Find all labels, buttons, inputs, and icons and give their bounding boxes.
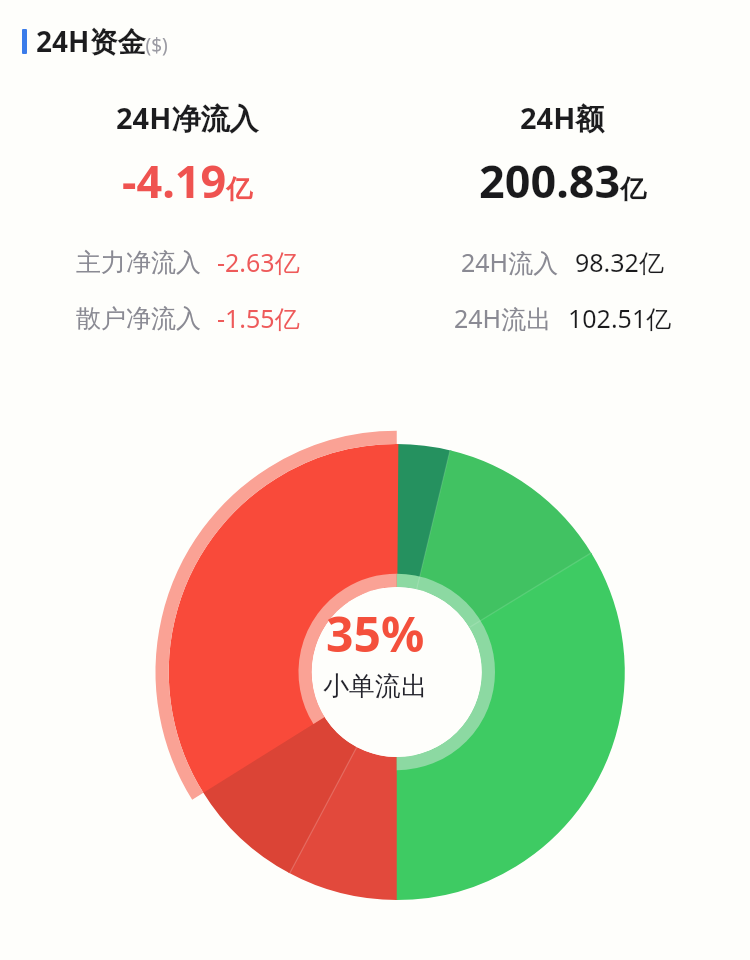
staticText: 98.32亿 [575, 245, 664, 279]
staticText: 102.51亿 [568, 301, 672, 335]
staticText: 24H净流入 [116, 98, 259, 138]
staticText: 35% [326, 601, 425, 666]
button[interactable]: 24H流出 [375, 301, 750, 335]
staticText: -2.63亿 [217, 245, 300, 279]
staticText: 24H流出 [454, 301, 552, 335]
staticText: 200.83亿 [479, 150, 647, 211]
staticText: 24H流入 [461, 245, 559, 279]
button[interactable]: 主力净流入 [0, 245, 375, 279]
staticText: 24H资金($) [36, 22, 168, 60]
staticText: 散户净流入 [76, 303, 201, 334]
staticText: 24H额 [520, 98, 605, 138]
button[interactable]: 资金流向占比环形图 [0, 395, 750, 895]
staticText: 主力净流入 [76, 247, 201, 278]
staticText: 小单流出 [323, 670, 427, 703]
button[interactable]: 24H资金($) [22, 22, 728, 60]
button[interactable]: 散户净流入 [0, 301, 375, 335]
button[interactable]: 24H流入 [375, 245, 750, 279]
staticText: -1.55亿 [217, 301, 300, 335]
staticText: -4.19亿 [122, 150, 253, 211]
